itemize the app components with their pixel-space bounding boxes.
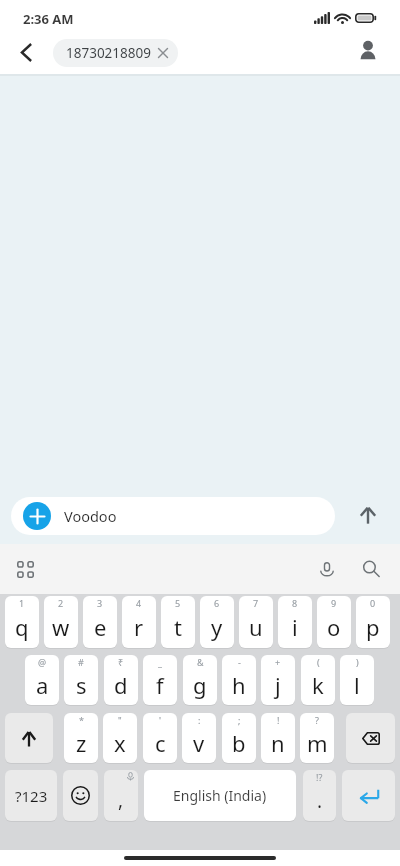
button[interactable]: !? (303, 770, 336, 821)
staticText: , (118, 787, 124, 813)
button[interactable]: & (183, 655, 217, 705)
button[interactable]: ; (222, 713, 256, 763)
button[interactable] (63, 770, 98, 821)
staticText: ' (159, 714, 162, 726)
button[interactable]: @ (25, 655, 59, 705)
button[interactable]: ? (300, 713, 334, 763)
staticText: 18730218809 (66, 44, 151, 62)
button[interactable]: 8 (278, 596, 312, 648)
staticText: s (76, 670, 87, 700)
staticText: 8 (292, 597, 298, 609)
staticText: v (193, 728, 205, 758)
staticText: x (114, 728, 126, 758)
staticText: # (78, 656, 84, 668)
staticText: b (232, 728, 246, 758)
staticText: 2:36 AM (23, 10, 74, 28)
staticText: . (317, 788, 323, 814)
button[interactable]: : (182, 713, 216, 763)
button[interactable]: _ (143, 655, 177, 705)
button[interactable]: English (India) (144, 770, 296, 821)
staticText: r (134, 612, 144, 642)
button[interactable]: 18730218809 (53, 39, 178, 67)
staticText: u (249, 612, 263, 642)
staticText: ! (277, 714, 280, 726)
button[interactable]: " (103, 713, 137, 763)
button[interactable]: ( (301, 655, 335, 705)
button[interactable]: 0 (356, 596, 390, 648)
staticText: n (271, 728, 285, 758)
button[interactable]: , (104, 770, 138, 821)
button[interactable]: 9 (317, 596, 351, 648)
staticText: d (114, 670, 128, 700)
staticText: - (238, 656, 241, 668)
staticText: !? (316, 771, 323, 783)
button[interactable] (346, 713, 395, 763)
button[interactable]: Back (6, 32, 46, 72)
staticText: 5 (175, 597, 181, 609)
staticText: 6 (214, 597, 220, 609)
staticText: t (174, 612, 182, 642)
staticText: ? (315, 714, 319, 726)
staticText: w (52, 612, 70, 642)
staticText: @ (38, 656, 47, 668)
button[interactable]: 3 (83, 596, 117, 648)
staticText: f (156, 670, 164, 700)
button[interactable]: 6 (200, 596, 234, 648)
button[interactable]: ₹ (104, 655, 138, 705)
staticText: y (211, 612, 223, 642)
staticText: ₹ (118, 656, 124, 668)
staticText: 7 (253, 597, 259, 609)
staticText: l (354, 670, 360, 700)
staticText: * (79, 714, 84, 726)
staticText: 2 (58, 597, 64, 609)
button[interactable]: ! (261, 713, 295, 763)
button[interactable]: # (64, 655, 98, 705)
staticText: o (327, 612, 341, 642)
button[interactable]: * (64, 713, 98, 763)
staticText: : (198, 714, 201, 726)
staticText: + (275, 656, 281, 668)
staticText: g (193, 670, 207, 700)
staticText: Voodoo (64, 506, 117, 526)
button[interactable]: Voice input (311, 553, 343, 585)
button[interactable]: 5 (161, 596, 195, 648)
staticText: h (232, 670, 246, 700)
button[interactable]: ?123 (5, 770, 57, 821)
button[interactable] (342, 770, 395, 821)
staticText: 1 (19, 597, 25, 609)
staticText: 9 (331, 597, 337, 609)
button[interactable]: Add attachment (23, 502, 51, 530)
button[interactable]: ) (340, 655, 374, 705)
button[interactable]: + (261, 655, 295, 705)
staticText: z (76, 728, 87, 758)
staticText: q (15, 612, 29, 642)
staticText: k (312, 670, 324, 700)
staticText: ?123 (15, 786, 48, 806)
staticText: a (36, 670, 49, 700)
button[interactable]: 4 (122, 596, 156, 648)
staticText: m (307, 728, 328, 758)
staticText: ( (317, 656, 320, 668)
button[interactable]: ' (143, 713, 177, 763)
button[interactable]: Apps (9, 553, 41, 585)
staticText: p (366, 612, 380, 642)
button[interactable]: Search (355, 553, 387, 585)
staticText: e (94, 612, 107, 642)
button[interactable]: 1 (5, 596, 39, 648)
staticText: English (India) (173, 786, 267, 805)
staticText: i (292, 612, 298, 642)
button[interactable]: Send (348, 496, 387, 535)
staticText: ) (356, 656, 359, 668)
staticText: ; (238, 714, 241, 726)
button[interactable]: - (222, 655, 256, 705)
staticText: 4 (136, 597, 142, 609)
staticText: 3 (97, 597, 103, 609)
button[interactable]: Contact info (348, 30, 388, 70)
staticText: c (155, 728, 166, 758)
button[interactable] (5, 713, 53, 763)
staticText: & (197, 656, 204, 668)
button[interactable]: Add attachment (11, 497, 335, 535)
button[interactable]: 2 (44, 596, 78, 648)
staticText: 0 (370, 597, 376, 609)
button[interactable]: 7 (239, 596, 273, 648)
